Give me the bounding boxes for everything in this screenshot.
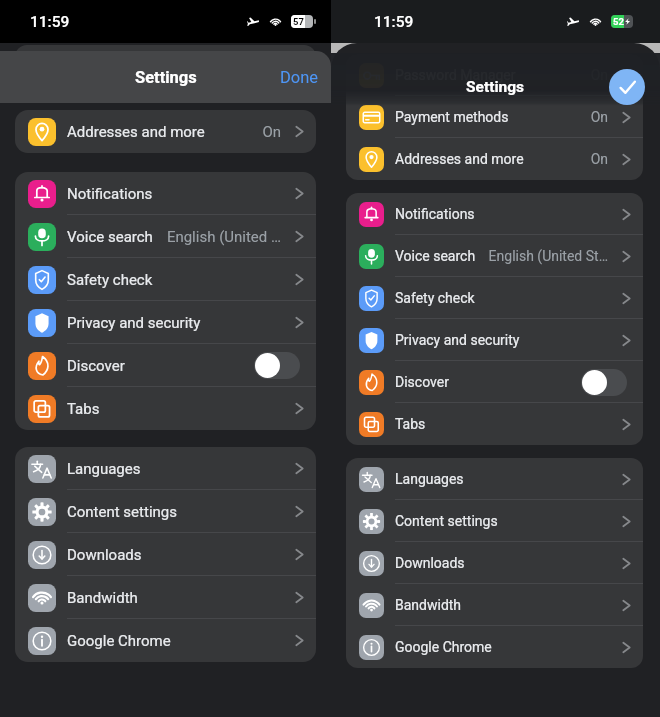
button[interactable]: Addresses and more [346,138,643,180]
button[interactable]: Google Chrome [346,626,643,668]
staticText: Content settings [395,513,498,529]
button[interactable]: Bandwidth [15,576,316,619]
staticText: Downloads [395,555,465,571]
staticText: Languages [67,460,141,478]
button[interactable]: Voice search [15,215,316,258]
staticText: Tabs [67,400,100,418]
button[interactable]: Addresses and more [15,110,316,153]
staticText: Payment methods [395,109,509,125]
staticText: On [262,123,281,141]
staticText: Languages [395,471,464,487]
staticText: Voice search [67,228,153,246]
button[interactable]: Languages [15,447,316,490]
button[interactable]: Content settings [15,490,316,533]
staticText: Notifications [67,185,153,203]
button[interactable]: Tabs [346,403,643,445]
staticText: Safety check [67,271,153,289]
staticText: 57 [293,16,304,27]
staticText: Bandwidth [395,597,462,613]
staticText: Content settings [67,503,177,521]
button[interactable]: Languages [346,458,643,500]
staticText: 11:59 [30,13,70,31]
button[interactable]: Google Chrome [15,619,316,662]
staticText: Privacy and security [67,314,201,332]
staticText: On [590,109,608,125]
staticText: Discover [395,374,449,390]
staticText: Safety check [395,290,475,306]
button[interactable]: Content settings [346,500,643,542]
button[interactable]: Safety check [346,277,643,319]
button[interactable]: Done [609,69,645,105]
staticText: Google Chrome [395,639,492,655]
button[interactable]: Tabs [15,387,316,430]
button[interactable]: Password Manager [346,54,643,96]
button[interactable]: Downloads [346,542,643,584]
button[interactable]: Payment methods [346,96,643,138]
staticText: Done [280,68,319,87]
button[interactable]: Notifications [15,172,316,215]
staticText: Privacy and security [395,332,520,348]
staticText: 52 [613,16,624,27]
button[interactable]: Toggle Discover [581,369,627,396]
button[interactable]: Privacy and security [346,319,643,361]
button[interactable]: Notifications [346,193,643,235]
staticText: Addresses and more [67,123,205,141]
staticText: Settings [135,68,197,87]
button[interactable]: Downloads [15,533,316,576]
button[interactable]: Toggle Discover [254,352,300,379]
staticText: Voice search [395,248,476,264]
button[interactable]: Discover [346,361,643,403]
staticText: English (United States) [483,248,608,264]
staticText: Settings [466,78,525,96]
staticText: Notifications [395,206,475,222]
staticText: Downloads [67,546,142,564]
staticText: Password Manager [395,67,516,83]
button[interactable]: Done [280,68,319,87]
staticText: Tabs [395,416,426,432]
button[interactable]: Discover [15,344,316,387]
staticText: Discover [67,357,125,375]
button[interactable]: Privacy and security [15,301,316,344]
staticText: Google Chrome [67,632,171,650]
staticText: Addresses and more [395,151,524,167]
button[interactable]: Voice search [346,235,643,277]
staticText: On [590,151,608,167]
button[interactable]: Bandwidth [346,584,643,626]
staticText: English (United States) [160,228,281,246]
button[interactable]: Safety check [15,258,316,301]
staticText: 11:59 [374,13,414,31]
staticText: Bandwidth [67,589,138,607]
